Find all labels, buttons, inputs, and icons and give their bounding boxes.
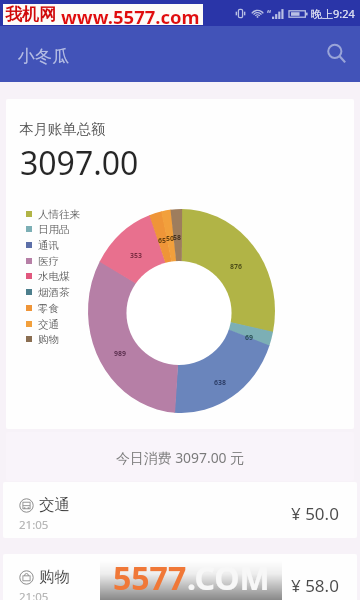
staticText: 水电煤 [38, 270, 70, 283]
staticText: ¥ 50.0 [291, 502, 339, 525]
button[interactable]: Search [317, 34, 357, 74]
staticText: 65 [158, 236, 167, 246]
staticText: 21:05 [19, 517, 49, 533]
staticText: 晚上9:24 [311, 6, 355, 21]
staticText: 5577 [113, 556, 187, 596]
staticText: .COM [187, 556, 270, 596]
staticText: 今日消费 3097.00 元 [116, 448, 245, 467]
staticText: 3097.00 [20, 141, 139, 185]
staticText: 日用品 [38, 223, 70, 236]
staticText: 353 [130, 251, 143, 261]
staticText: 烟酒茶 [38, 286, 70, 299]
staticText: 交通 [38, 318, 59, 331]
button[interactable]: 交通 [3, 482, 357, 538]
staticText: www.5577.com [61, 4, 200, 25]
staticText: ¥ 58.0 [291, 574, 339, 597]
staticText: 21:05 [19, 589, 49, 600]
staticText: 通讯 [38, 239, 59, 252]
staticText: 638 [214, 378, 227, 388]
staticText: 人情往来 [38, 208, 80, 221]
staticText: 零食 [38, 302, 59, 315]
staticText: 医疗 [38, 255, 59, 268]
staticText: 876 [230, 262, 243, 272]
staticText: 交通 [39, 495, 70, 515]
staticText: 50 [166, 234, 175, 244]
staticText: 989 [114, 349, 127, 359]
button[interactable]: 今日消费 3097.00 元 [6, 432, 354, 481]
staticText: “ [267, 6, 271, 21]
staticText: 本月账单总额 [19, 120, 106, 138]
staticText: 小冬瓜 [18, 46, 69, 67]
staticText: 我机网 [5, 4, 56, 25]
staticText: 购物 [38, 333, 59, 346]
button[interactable]: 购物 [3, 554, 357, 600]
staticText: 69 [245, 333, 254, 343]
staticText: 58 [173, 233, 182, 243]
staticText: 购物 [39, 567, 70, 587]
